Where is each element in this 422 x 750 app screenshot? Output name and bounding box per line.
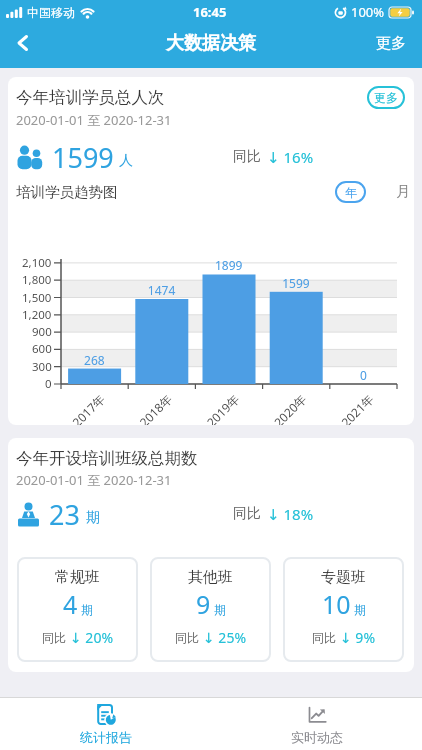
button[interactable]: 月	[396, 183, 410, 201]
staticText: 10	[322, 587, 351, 621]
staticText: 同比	[233, 148, 261, 166]
staticText: 更多	[374, 90, 398, 105]
staticText: 2020-01-01 至 2020-12-31	[16, 471, 172, 489]
staticText: 16:45	[193, 3, 227, 21]
staticText: 更多	[376, 34, 406, 53]
staticText: 期	[81, 602, 93, 617]
button[interactable]: 统计报告	[0, 698, 211, 750]
button[interactable]: 其他班	[150, 557, 271, 662]
button[interactable]: 更多	[370, 28, 412, 59]
button[interactable]: 年	[335, 181, 366, 203]
staticText: 实时动态	[291, 729, 343, 745]
staticText: 今年培训学员总人次	[16, 87, 165, 108]
staticText: 其他班	[188, 568, 233, 587]
staticText: ↓ 16%	[267, 147, 314, 167]
staticText: 年	[345, 185, 357, 200]
staticText: 4	[63, 587, 78, 621]
button[interactable]	[6, 27, 38, 59]
button[interactable]: 常规班	[17, 557, 138, 662]
staticText: 期	[214, 602, 226, 617]
staticText: 中国移动	[27, 5, 75, 20]
staticText: 专题班	[321, 568, 366, 587]
staticText: 培训学员趋势图	[16, 183, 118, 201]
staticText: 9	[196, 587, 211, 621]
staticText: 期	[86, 509, 100, 527]
staticText: 大数据决策	[166, 32, 256, 55]
staticText: 期	[354, 602, 366, 617]
staticText: 同比	[42, 630, 66, 645]
staticText: 100%	[351, 3, 385, 21]
button[interactable]: 实时动态	[211, 698, 422, 750]
staticText: 同比	[312, 630, 336, 645]
staticText: ↓ 9%	[340, 628, 376, 647]
staticText: 1599	[52, 139, 114, 176]
staticText: 常规班	[55, 568, 100, 587]
staticText: 同比	[233, 505, 261, 523]
staticText: 月	[396, 183, 410, 201]
staticText: 同比	[175, 630, 199, 645]
staticText: 今年开设培训班级总期数	[16, 448, 198, 469]
staticText: ↓ 18%	[267, 504, 314, 524]
staticText: ↓ 25%	[203, 628, 247, 647]
staticText: ↓ 20%	[70, 628, 114, 647]
staticText: 23	[49, 496, 80, 533]
staticText: 2020-01-01 至 2020-12-31	[16, 111, 172, 129]
button[interactable]: 专题班	[283, 557, 404, 662]
button[interactable]: 更多	[367, 86, 405, 109]
staticText: 人	[119, 152, 133, 170]
staticText: 统计报告	[80, 729, 132, 745]
